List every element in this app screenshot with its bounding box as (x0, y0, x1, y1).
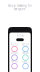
staticText: Steps (22, 43, 29, 46)
staticText: everyone (14, 7, 26, 11)
staticText: Move (22, 51, 29, 55)
button[interactable]: Water (21, 60, 30, 69)
button[interactable]: Mind (10, 60, 19, 69)
button[interactable]: Focus (10, 51, 19, 60)
staticText: Water (22, 60, 29, 63)
button[interactable]: Sleep (10, 43, 19, 51)
staticText: Mind (11, 60, 18, 63)
staticText: Focus (11, 51, 18, 55)
button[interactable]: Steps (21, 43, 30, 51)
staticText: Today (16, 34, 23, 37)
staticText: Sleep tracking for (8, 4, 32, 7)
staticText: Sleep (10, 43, 18, 46)
button[interactable]: Move (21, 51, 30, 60)
